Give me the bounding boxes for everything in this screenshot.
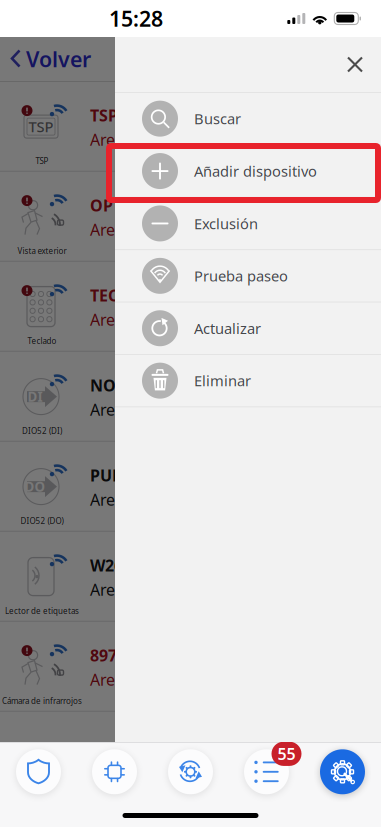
staticText: Volver (26, 45, 91, 73)
button[interactable]: Automatización (152, 744, 228, 800)
button[interactable]: Ajustes (304, 744, 380, 800)
button[interactable]: Dispositivos (76, 744, 152, 800)
staticText: DI (27, 388, 42, 405)
button[interactable]: Exclusión (115, 198, 381, 250)
staticText: Area 1 (90, 219, 137, 240)
staticText: Area 1 (90, 489, 137, 510)
staticText: DIO52 (DI) (22, 426, 62, 436)
staticText: Area 1 (90, 399, 137, 420)
staticText: Lector de etiquetas (5, 606, 79, 616)
staticText: Añadir dispositivo (194, 161, 317, 181)
staticText: TSP (28, 117, 53, 136)
button[interactable]: TECLADO (0, 262, 381, 352)
button[interactable]: Eliminar (115, 355, 381, 407)
staticText: TECLADO (90, 285, 163, 306)
button[interactable]: Buscar (115, 93, 381, 145)
staticText: Exclusión (194, 214, 258, 233)
button[interactable]: Eventos (228, 744, 304, 800)
button[interactable]: W26 (0, 532, 381, 622)
staticText: Teclado (27, 336, 56, 346)
button[interactable]: Volver (0, 37, 91, 81)
staticText: Actualizar (194, 318, 261, 338)
button[interactable]: NO USADO (0, 352, 381, 442)
button[interactable]: Cerrar (338, 47, 372, 81)
staticText: Area 1 (90, 309, 137, 330)
staticText: OPTEX (90, 195, 142, 216)
button[interactable]: TSP-1 (0, 82, 381, 172)
staticText: TSP-1 (90, 105, 132, 126)
staticText: TSP (35, 156, 48, 166)
button[interactable]: Añadir dispositivo (115, 145, 381, 198)
button[interactable]: Prueba paseo (115, 250, 381, 302)
staticText: Cámara de infrarrojos (2, 696, 82, 706)
button[interactable]: OPTEX (0, 172, 381, 262)
button[interactable]: Actualizar (115, 302, 381, 355)
staticText: 55 (277, 743, 295, 764)
staticText: Eliminar (194, 371, 251, 390)
staticText: Area 1 (90, 669, 137, 690)
staticText: 897 IR (90, 645, 137, 666)
staticText: Buscar (194, 109, 241, 128)
button[interactable]: 897 IR (0, 622, 381, 712)
staticText: Vista exterior (17, 246, 66, 256)
button[interactable]: Protección (0, 744, 76, 800)
staticText: DO (24, 478, 45, 495)
staticText: 15:28 (109, 4, 163, 33)
staticText: Area 1 (90, 579, 137, 600)
staticText: Area 1 (90, 129, 137, 150)
staticText: NO USADO (90, 375, 177, 396)
staticText: PUERTA (90, 465, 150, 486)
staticText: Prueba paseo (194, 266, 288, 286)
staticText: W26 (90, 555, 123, 576)
staticText: DIO52 (DO) (20, 516, 63, 526)
button[interactable]: PUERTA (0, 442, 381, 532)
